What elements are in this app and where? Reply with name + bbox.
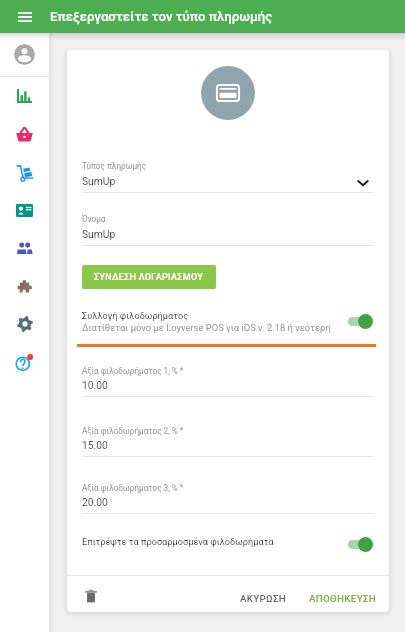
button[interactable]: Inventory: [0, 153, 49, 191]
button[interactable]: [82, 424, 374, 458]
button[interactable]: Integrations: [0, 267, 49, 305]
button[interactable]: Customers: [0, 191, 49, 229]
staticText: 15.00: [82, 439, 108, 451]
staticText: Όνομα: [82, 214, 106, 224]
staticText: Αξία φιλοδωρήματος 2, % *: [82, 426, 184, 436]
staticText: SumUp: [82, 228, 116, 240]
button[interactable]: Menu: [8, 0, 41, 33]
staticText: Αξία φιλοδωρήματος 3, % *: [82, 483, 184, 493]
staticText: Αξία φιλοδωρήματος 1, % *: [82, 366, 184, 376]
staticText: 20.00: [82, 496, 108, 508]
staticText: Διατίθεται μόνο με Loyverse POS για iOS …: [82, 322, 331, 333]
button[interactable]: [82, 532, 374, 552]
staticText: 10.00: [82, 379, 108, 391]
staticText: Επεξεργαστείτε τον τύπο πληρωμής: [50, 9, 273, 24]
button[interactable]: ΣΥΝΔΕΣΗ ΛΟΓΑΡΙΑΣΜΟΥ: [82, 265, 216, 289]
button[interactable]: [82, 159, 374, 193]
staticText: ΣΥΝΔΕΣΗ ΛΟΓΑΡΙΑΣΜΟΥ: [94, 272, 204, 283]
button[interactable]: Employees: [0, 229, 49, 267]
staticText: SumUp: [82, 175, 116, 187]
button[interactable]: Delete: [79, 584, 103, 608]
button[interactable]: Account: [0, 33, 49, 76]
button[interactable]: Toggle: [348, 536, 374, 552]
button[interactable]: Settings: [0, 305, 49, 343]
staticText: Επιτρέψτε τα προσαρμοσμένα φιλοδωρήματα: [82, 536, 274, 547]
button[interactable]: [82, 212, 374, 246]
button[interactable]: [82, 481, 374, 515]
button[interactable]: [82, 305, 374, 337]
button[interactable]: Toggle: [348, 313, 374, 329]
button[interactable]: Help: [0, 343, 49, 381]
button[interactable]: ΑΚΥΡΩΣΗ: [234, 587, 293, 609]
button[interactable]: Reports: [0, 77, 49, 115]
staticText: Τύπος πληρωμής: [82, 161, 147, 171]
button[interactable]: ΑΠΟΘΗΚΕΥΣΗ: [303, 587, 383, 609]
button[interactable]: [82, 364, 374, 398]
staticText: ΑΚΥΡΩΣΗ: [240, 593, 287, 604]
button[interactable]: Sales: [0, 115, 49, 153]
staticText: ΑΠΟΘΗΚΕΥΣΗ: [309, 593, 377, 604]
staticText: Συλλογή φιλοδωρήματος: [82, 310, 189, 321]
